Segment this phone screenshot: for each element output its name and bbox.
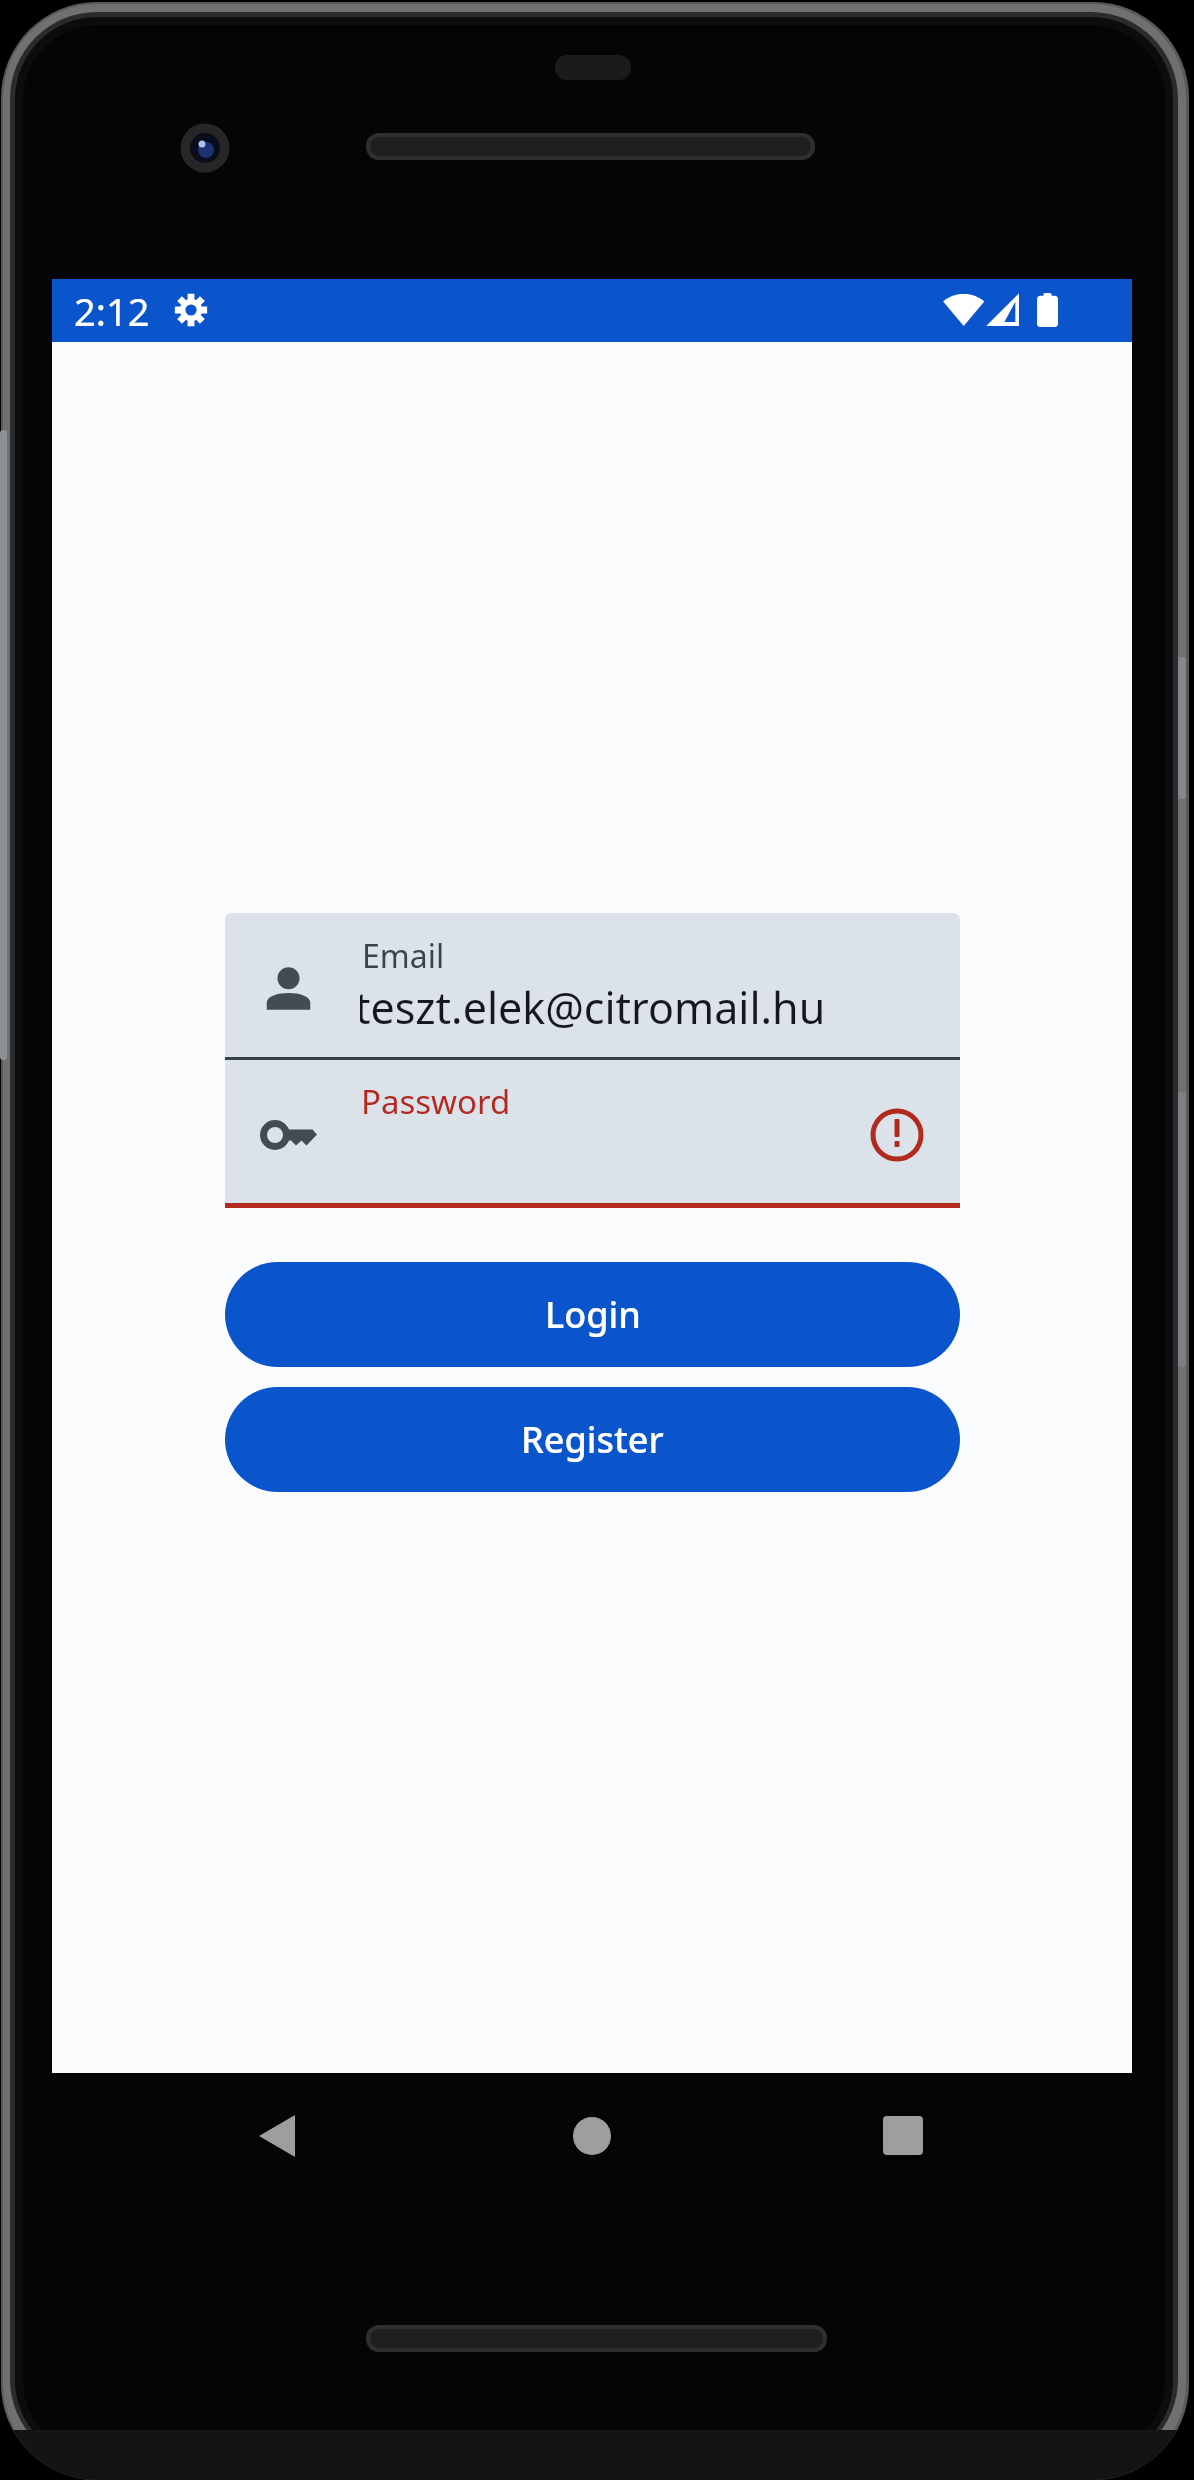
button[interactable]: Register [225,1387,960,1492]
button[interactable]: Back [222,2086,332,2186]
button[interactable]: Recent apps [845,2086,955,2186]
button[interactable]: Login [225,1262,960,1367]
button[interactable]: Home [537,2086,647,2186]
button[interactable]: Email [225,913,960,1057]
button[interactable]: Password [225,1060,960,1203]
staticText: Email [362,934,445,978]
staticText: Login [545,1290,641,1339]
other: Password error [870,1108,924,1162]
staticText: teszt.elek@citromail.hu [360,978,826,1037]
staticText: 2:12 [74,285,150,337]
staticText: Password [361,1079,511,1124]
staticText: Register [521,1415,664,1464]
